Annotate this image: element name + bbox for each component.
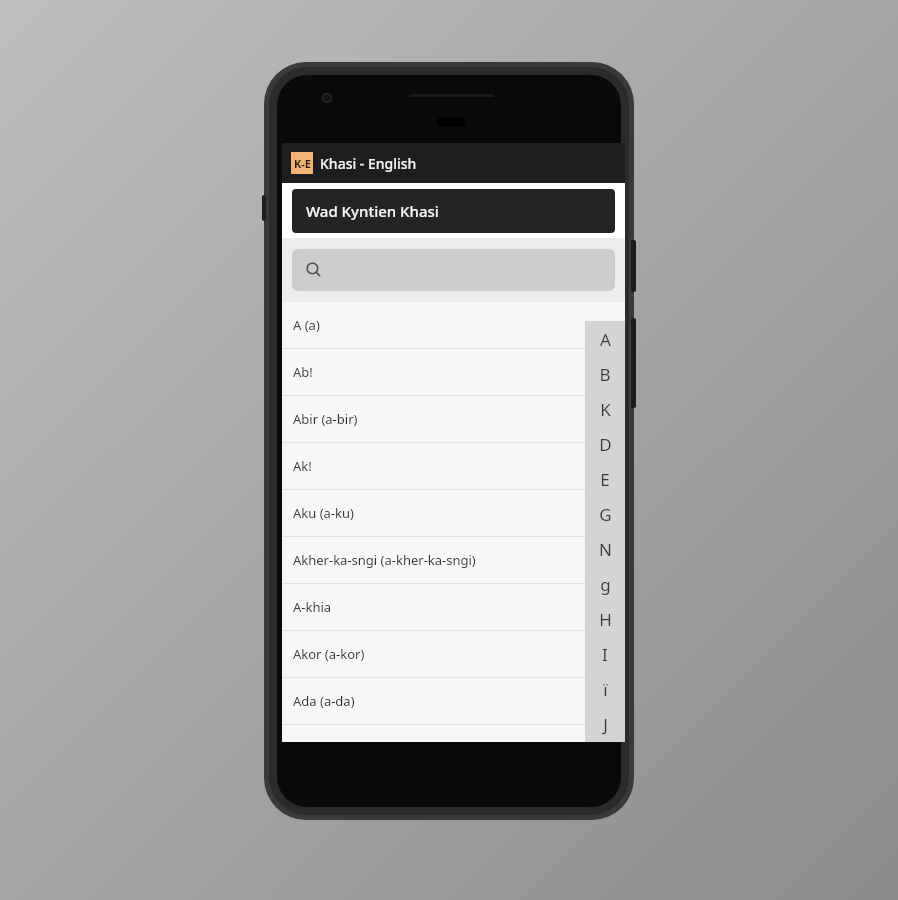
staticText: Akor (a-kor) [293,645,365,663]
staticText: D [599,433,612,456]
button[interactable]: A-khia [282,584,625,630]
button[interactable]: J [585,707,625,742]
button[interactable]: Ada (a-da) [282,678,625,724]
staticText: A-khia [293,598,332,616]
staticText: G [599,503,612,526]
staticText: Wad Kyntien Khasi [306,201,439,221]
staticText: J [603,713,608,736]
button[interactable]: Aku (a-ku) [282,490,625,536]
button[interactable]: K [585,392,625,427]
button[interactable]: Ak! [282,443,625,489]
staticText: Ak! [293,457,312,475]
staticText: H [599,608,612,631]
button[interactable]: G [585,497,625,532]
button[interactable]: H [585,602,625,637]
staticText: K-E [294,156,311,171]
button[interactable]: A (a) [282,302,625,348]
staticText: Khasi - English [320,154,417,173]
staticText: ï [603,678,608,701]
button[interactable]: Akor (a-kor) [282,631,625,677]
staticText: Ab! [293,363,313,381]
button[interactable]: Abir (a-bir) [282,396,625,442]
button[interactable]: Akher-ka-sngi (a-kher-ka-sngi) [282,537,625,583]
button[interactable]: E [585,462,625,497]
staticText: A [600,328,611,351]
button[interactable]: g [585,567,625,602]
staticText: Ada (a-da) [293,692,355,710]
staticText: I [602,643,608,666]
staticText: E [600,468,610,491]
staticText: Aku (a-ku) [293,504,354,522]
staticText: B [599,363,611,386]
button[interactable]: I [585,637,625,672]
button[interactable]: Wad Kyntien Khasi [292,189,615,233]
staticText: Akher-ka-sngi (a-kher-ka-sngi) [293,551,476,569]
button[interactable]: A [585,321,625,357]
button[interactable]: ï [585,672,625,707]
staticText: Abir (a-bir) [293,410,358,428]
button[interactable]: Search [292,249,615,291]
staticText: A (a) [293,316,320,334]
staticText: N [599,538,612,561]
staticText: K [600,398,611,421]
button[interactable]: D [585,427,625,462]
button[interactable]: N [585,532,625,567]
button[interactable]: Ab! [282,349,625,395]
button[interactable]: Khasi English dictionary icon [291,152,313,174]
button[interactable]: B [585,357,625,392]
staticText: g [600,573,611,596]
